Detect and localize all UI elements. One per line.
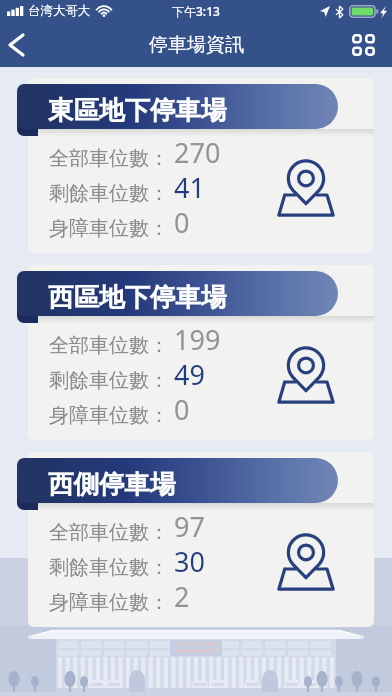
staticText: 41 [174, 169, 205, 206]
button[interactable]: 西側停車場 [17, 458, 338, 503]
staticText: 全部車位數： [49, 146, 169, 171]
staticText: 西側停車場 [48, 468, 176, 500]
button[interactable]: Back [3, 23, 29, 67]
staticText: 30 [174, 543, 205, 580]
button[interactable]: Map location [278, 160, 334, 216]
staticText: 剩餘車位數： [49, 555, 169, 580]
staticText: 身障車位數： [49, 216, 169, 241]
button[interactable]: 西區地下停車場 [17, 271, 338, 316]
staticText: 東區地下停車場 [48, 94, 227, 126]
staticText: 97 [174, 508, 205, 545]
staticText: 身障車位數： [49, 403, 169, 428]
staticText: 全部車位數： [49, 520, 169, 545]
staticText: 49 [174, 356, 205, 393]
button[interactable] [28, 452, 374, 627]
button[interactable] [28, 78, 374, 253]
staticText: 全部車位數： [49, 333, 169, 358]
staticText: 2 [174, 578, 190, 615]
staticText: 台湾大哥大 [28, 3, 90, 19]
button[interactable] [28, 265, 374, 440]
button[interactable]: Map location [278, 534, 334, 590]
button[interactable]: Grid view [352, 33, 375, 56]
staticText: 剩餘車位數： [49, 368, 169, 393]
staticText: 0 [174, 391, 190, 428]
staticText: 停車場資訊 [149, 33, 244, 57]
staticText: 身障車位數： [49, 590, 169, 615]
staticText: 剩餘車位數： [49, 181, 169, 206]
staticText: 西區地下停車場 [48, 281, 227, 313]
button[interactable]: Map location [278, 347, 334, 403]
button[interactable]: 東區地下停車場 [17, 84, 338, 129]
staticText: 270 [174, 134, 221, 171]
staticText: 下午3:13 [172, 3, 220, 19]
staticText: 199 [174, 321, 221, 358]
staticText: 0 [174, 204, 190, 241]
